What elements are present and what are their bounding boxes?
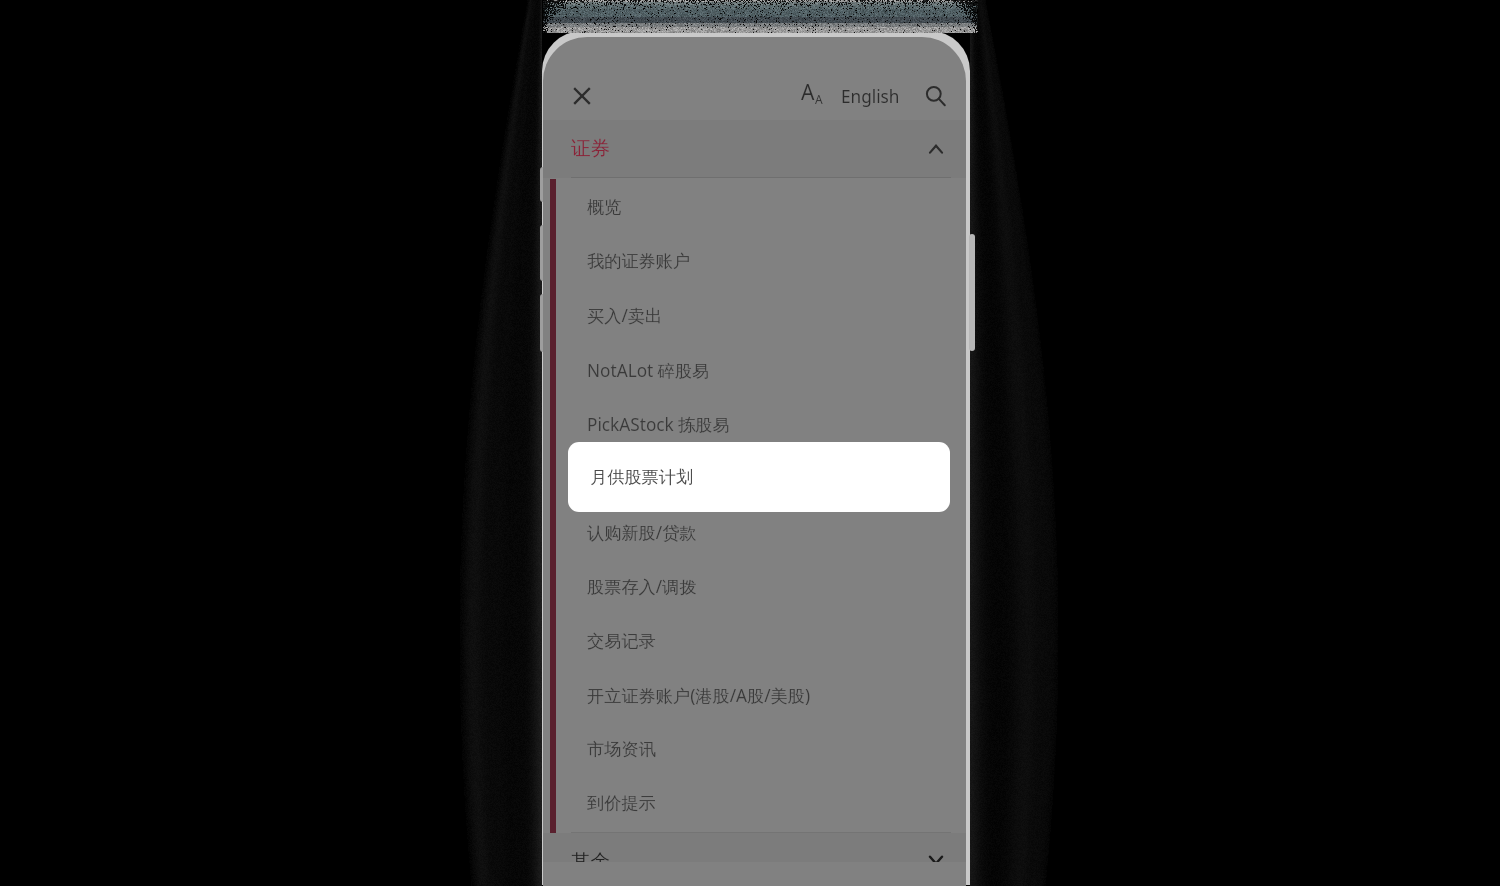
staticText: 证券 [571, 136, 610, 161]
staticText: 买入/卖出 [587, 304, 663, 327]
button[interactable]: 交易记录 [556, 614, 960, 668]
button[interactable]: 开立证券账户(港股/A股/美股) [556, 668, 960, 722]
button[interactable]: 股票存入/调拨 [556, 559, 960, 613]
staticText: English [841, 85, 900, 108]
button[interactable]: PickAStock 拣股易 [556, 397, 960, 451]
button[interactable]: English [835, 74, 905, 118]
staticText: 市场资讯 [587, 738, 656, 760]
staticText: 我的证券账户 [587, 250, 691, 272]
staticText: 月供股票计划 [590, 466, 694, 488]
button[interactable]: 买入/卖出 [556, 288, 960, 342]
staticText: A [815, 91, 823, 107]
button[interactable]: 概览 [556, 180, 960, 234]
button[interactable]: NotALot 碎股易 [556, 343, 960, 397]
staticText: 认购新股/贷款 [587, 521, 697, 544]
staticText: PickAStock 拣股易 [587, 413, 730, 436]
button[interactable]: 我的证券账户 [556, 234, 960, 288]
button[interactable]: 认购新股/贷款 [556, 505, 960, 559]
button[interactable]: Text size [790, 70, 834, 114]
staticText: A [801, 78, 815, 107]
button[interactable]: 到价提示 [556, 776, 960, 830]
staticText: 开立证券账户(港股/A股/美股) [587, 684, 811, 707]
button[interactable]: 证券 [543, 120, 966, 178]
staticText: NotALot 碎股易 [587, 359, 710, 382]
staticText: 交易记录 [587, 630, 656, 652]
button[interactable]: Search [914, 74, 958, 118]
staticText: 其余 [571, 849, 610, 862]
staticText: 到价提示 [587, 792, 656, 814]
staticText: 股票存入/调拨 [587, 575, 697, 598]
staticText: 概览 [587, 196, 622, 218]
button[interactable]: Close [560, 74, 604, 118]
button[interactable]: 其余 [543, 833, 966, 862]
button[interactable]: 市场资讯 [556, 722, 960, 776]
button[interactable]: 月供股票计划 [568, 442, 950, 512]
